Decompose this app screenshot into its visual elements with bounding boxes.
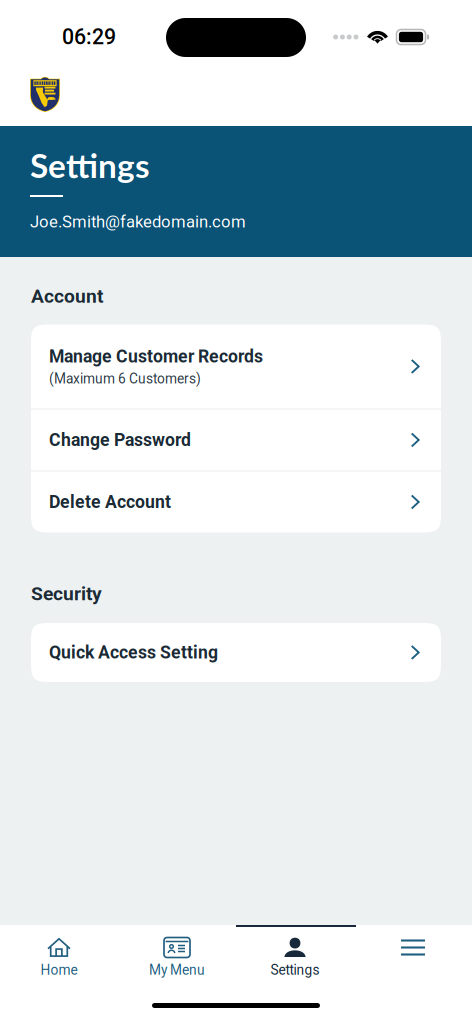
staticText: Settings (270, 962, 319, 978)
staticText: Delete Account (49, 492, 171, 512)
staticText: Joe.Smith@fakedomain.com (30, 212, 246, 231)
button[interactable]: My Menu (118, 927, 236, 983)
staticText: Change Password (49, 430, 191, 450)
staticText: Quick Access Setting (49, 642, 218, 663)
staticText: Manage Customer Records (49, 346, 263, 367)
button[interactable]: Manage Customer Records (31, 324, 441, 408)
button[interactable]: Settings (236, 927, 354, 983)
staticText: 06:29 (62, 24, 116, 49)
staticText: Settings (30, 145, 150, 185)
staticText: (Maximum 6 Customers) (49, 371, 201, 387)
staticText: Security (31, 582, 102, 605)
button[interactable]: More (354, 927, 472, 983)
button[interactable]: Quick Access Setting (31, 623, 441, 682)
staticText: Home (40, 962, 77, 978)
button[interactable]: Change Password (31, 409, 441, 470)
staticText: Account (31, 285, 103, 307)
button[interactable]: Delete Account (31, 471, 441, 532)
button[interactable]: Home (0, 927, 118, 983)
staticText: My Menu (149, 962, 205, 978)
